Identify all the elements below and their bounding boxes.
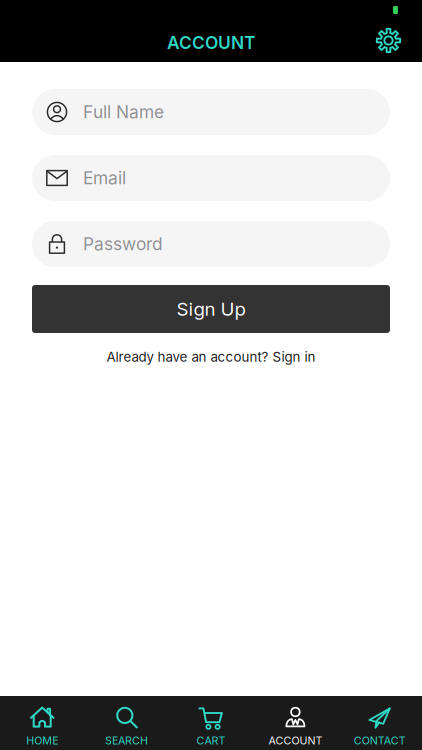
button[interactable]: Email <box>32 155 390 201</box>
button[interactable]: CONTACT <box>338 696 422 750</box>
staticText: Already have an account? Sign in <box>106 349 315 365</box>
button[interactable]: Password <box>32 221 390 267</box>
button[interactable]: Settings <box>376 28 401 53</box>
staticText: ACCOUNT <box>268 734 322 747</box>
staticText: SEARCH <box>105 734 148 747</box>
staticText: Full Name <box>83 102 164 122</box>
staticText: CONTACT <box>354 734 406 747</box>
button[interactable]: Full Name <box>32 89 390 135</box>
staticText: ACCOUNT <box>167 33 255 53</box>
staticText: HOME <box>26 734 58 747</box>
button[interactable]: ACCOUNT <box>253 696 338 750</box>
button[interactable]: Sign Up <box>32 285 390 333</box>
staticText: Password <box>83 234 163 254</box>
staticText: CART <box>196 734 225 747</box>
button[interactable]: CART <box>169 696 253 750</box>
staticText: Sign Up <box>176 298 245 320</box>
button[interactable]: SEARCH <box>84 696 169 750</box>
staticText: Email <box>83 168 126 188</box>
button[interactable]: HOME <box>0 696 84 750</box>
button[interactable]: Already have an account? Sign in <box>106 349 315 365</box>
